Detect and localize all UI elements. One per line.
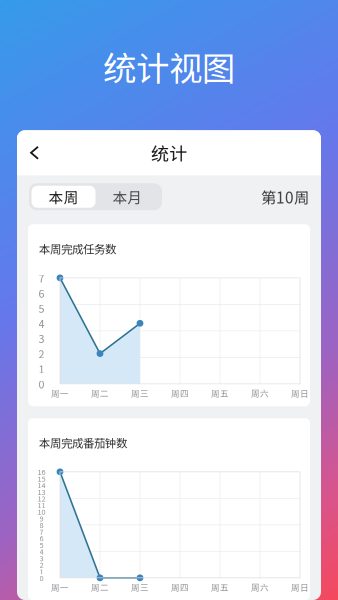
staticText: 5 bbox=[38, 300, 44, 316]
staticText: 8 bbox=[39, 519, 43, 530]
staticText: 周三 bbox=[131, 581, 149, 593]
staticText: 本周 bbox=[48, 186, 78, 207]
staticText: 周二 bbox=[91, 581, 109, 593]
staticText: 2 bbox=[39, 559, 43, 570]
staticText: 统计视图 bbox=[103, 42, 235, 90]
staticText: 0 bbox=[38, 376, 44, 391]
staticText: 周二 bbox=[91, 387, 109, 399]
staticText: 15 bbox=[37, 473, 45, 484]
staticText: 11 bbox=[37, 500, 45, 510]
staticText: 4 bbox=[39, 546, 43, 557]
staticText: 9 bbox=[39, 513, 43, 523]
staticText: 6 bbox=[39, 533, 43, 543]
staticText: 本月 bbox=[112, 186, 142, 207]
staticText: 周四 bbox=[171, 387, 189, 399]
staticText: 3 bbox=[38, 331, 44, 346]
staticText: 10 bbox=[37, 506, 45, 517]
button[interactable]: 本周 bbox=[31, 186, 95, 208]
staticText: 4 bbox=[38, 316, 44, 331]
staticText: 2 bbox=[38, 346, 44, 361]
staticText: 14 bbox=[37, 480, 45, 490]
staticText: 周三 bbox=[131, 387, 149, 399]
staticText: 周五 bbox=[211, 581, 229, 593]
staticText: 3 bbox=[39, 553, 43, 563]
staticText: 12 bbox=[37, 493, 45, 504]
staticText: 6 bbox=[38, 285, 44, 301]
button[interactable]: 本月 bbox=[95, 186, 159, 208]
staticText: 周六 bbox=[251, 581, 269, 593]
staticText: 0 bbox=[39, 572, 43, 583]
staticText: 统计 bbox=[151, 140, 187, 166]
staticText: 1 bbox=[38, 361, 44, 376]
staticText: 周日 bbox=[291, 387, 309, 399]
staticText: 7 bbox=[39, 526, 43, 537]
staticText: 周五 bbox=[211, 387, 229, 399]
staticText: 本周完成番茄钟数 bbox=[39, 434, 127, 451]
staticText: 周六 bbox=[251, 387, 269, 399]
staticText: 13 bbox=[37, 486, 45, 497]
staticText: 16 bbox=[37, 466, 45, 477]
staticText: 5 bbox=[39, 539, 43, 550]
staticText: 第10周 bbox=[261, 186, 309, 208]
staticText: 周四 bbox=[171, 581, 189, 593]
staticText: 1 bbox=[39, 566, 43, 576]
button[interactable]: Back bbox=[17, 135, 50, 171]
staticText: 周一 bbox=[51, 581, 69, 593]
staticText: 周日 bbox=[291, 581, 309, 593]
staticText: 7 bbox=[38, 270, 44, 285]
staticText: 本周完成任务数 bbox=[39, 240, 116, 257]
staticText: 周一 bbox=[51, 387, 69, 399]
